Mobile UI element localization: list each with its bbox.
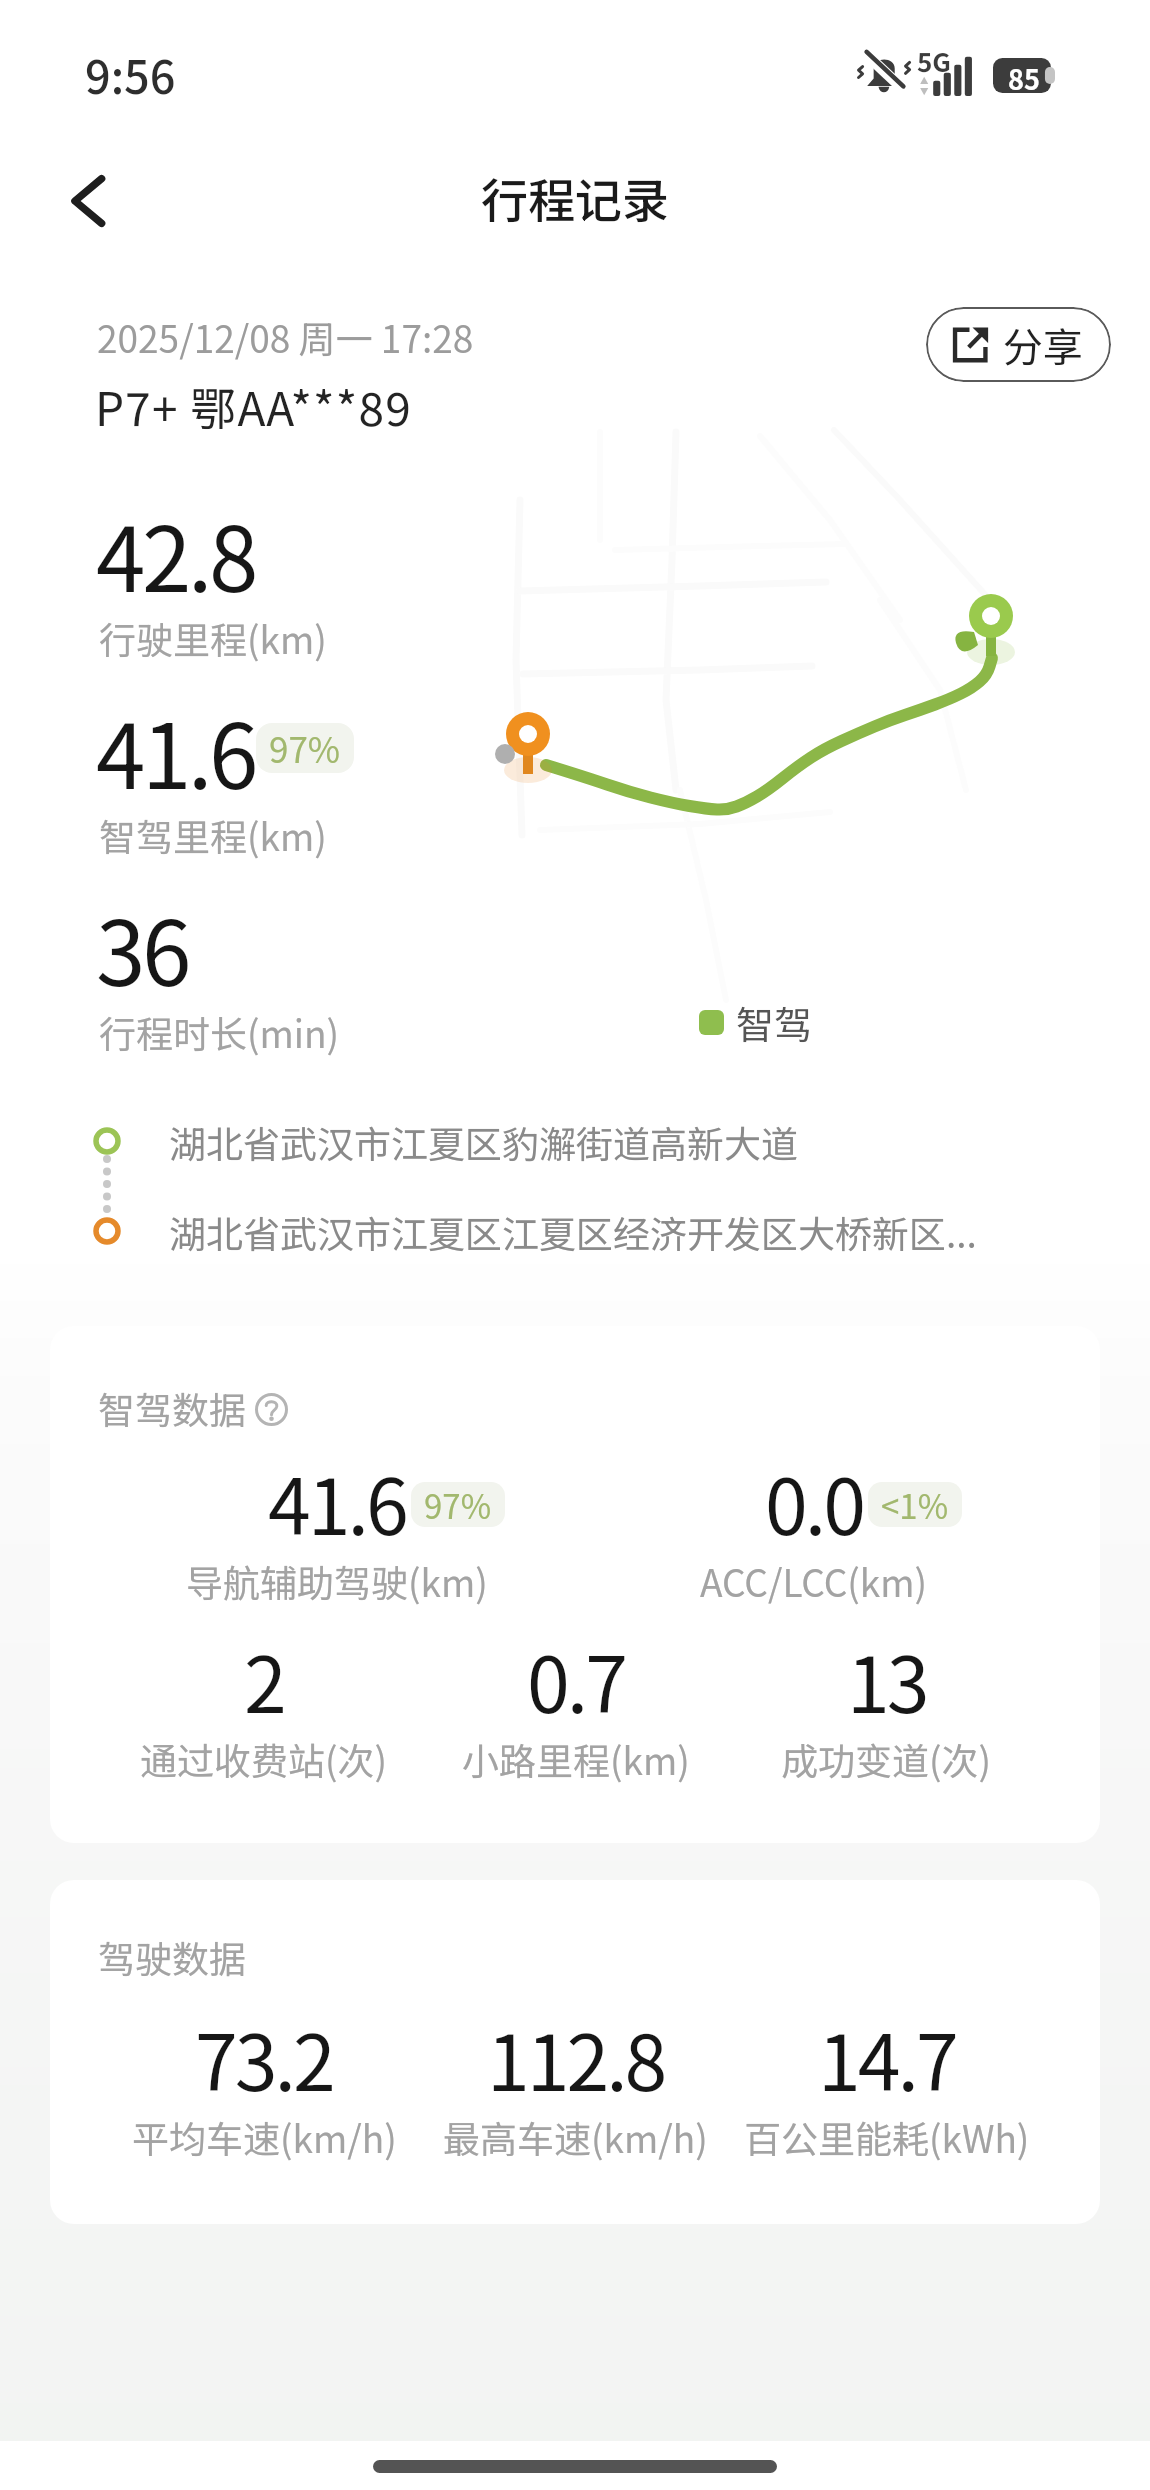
staticText: 14.7: [818, 2002, 956, 2113]
staticText: 5G: [917, 42, 951, 80]
staticText: 2025/12/08 周一 17:28: [97, 310, 474, 364]
staticText: 42.8: [96, 489, 255, 618]
staticText: 最高车速(km/h): [443, 2110, 708, 2164]
button[interactable]: 分享: [926, 307, 1111, 382]
staticText: 9:56: [85, 42, 176, 107]
staticText: 112.8: [487, 2002, 665, 2113]
staticText: 平均车速(km/h): [132, 2110, 397, 2164]
staticText: 导航辅助驾驶(km): [186, 1554, 488, 1608]
staticText: 分享: [1003, 316, 1083, 374]
staticText: 行程时长(min): [99, 1005, 340, 1059]
staticText: <1%: [881, 1482, 949, 1526]
staticText: P7+ 鄂AA***89: [95, 373, 412, 440]
staticText: 行程记录: [481, 163, 669, 231]
staticText: 36: [96, 883, 188, 1012]
staticText: ACC/LCC(km): [700, 1554, 927, 1608]
staticText: 2: [244, 1624, 284, 1735]
staticText: 成功变道(次): [781, 1732, 992, 1786]
staticText: 97%: [424, 1482, 492, 1526]
staticText: 智驾里程(km): [99, 808, 327, 862]
staticText: 智驾数据: [98, 1381, 246, 1435]
staticText: 通过收费站(次): [140, 1732, 388, 1786]
staticText: 湖北省武汉市江夏区豹澥街道高新大道: [169, 1115, 798, 1169]
staticText: 85: [1008, 59, 1040, 94]
button[interactable]: Help about assisted driving data: [255, 1393, 288, 1426]
staticText: 97%: [269, 723, 341, 772]
staticText: 小路里程(km): [462, 1732, 690, 1786]
button[interactable]: Back: [50, 158, 136, 244]
button[interactable]: 湖北省武汉市江夏区豹澥街道高新大道: [57, 1098, 1090, 1278]
staticText: 驾驶数据: [98, 1930, 246, 1984]
staticText: 73.2: [195, 2002, 333, 2113]
staticText: 百公里能耗(kWh): [744, 2110, 1030, 2164]
staticText: 41.6: [268, 1446, 406, 1557]
staticText: 湖北省武汉市江夏区江夏区经济开发区大桥新区...: [169, 1205, 977, 1259]
staticText: 13: [847, 1624, 927, 1735]
staticText: 41.6: [96, 686, 255, 815]
staticText: 智驾: [736, 995, 813, 1050]
staticText: 0.0: [765, 1446, 863, 1557]
staticText: 0.7: [527, 1624, 625, 1735]
staticText: 行驶里程(km): [99, 611, 327, 665]
